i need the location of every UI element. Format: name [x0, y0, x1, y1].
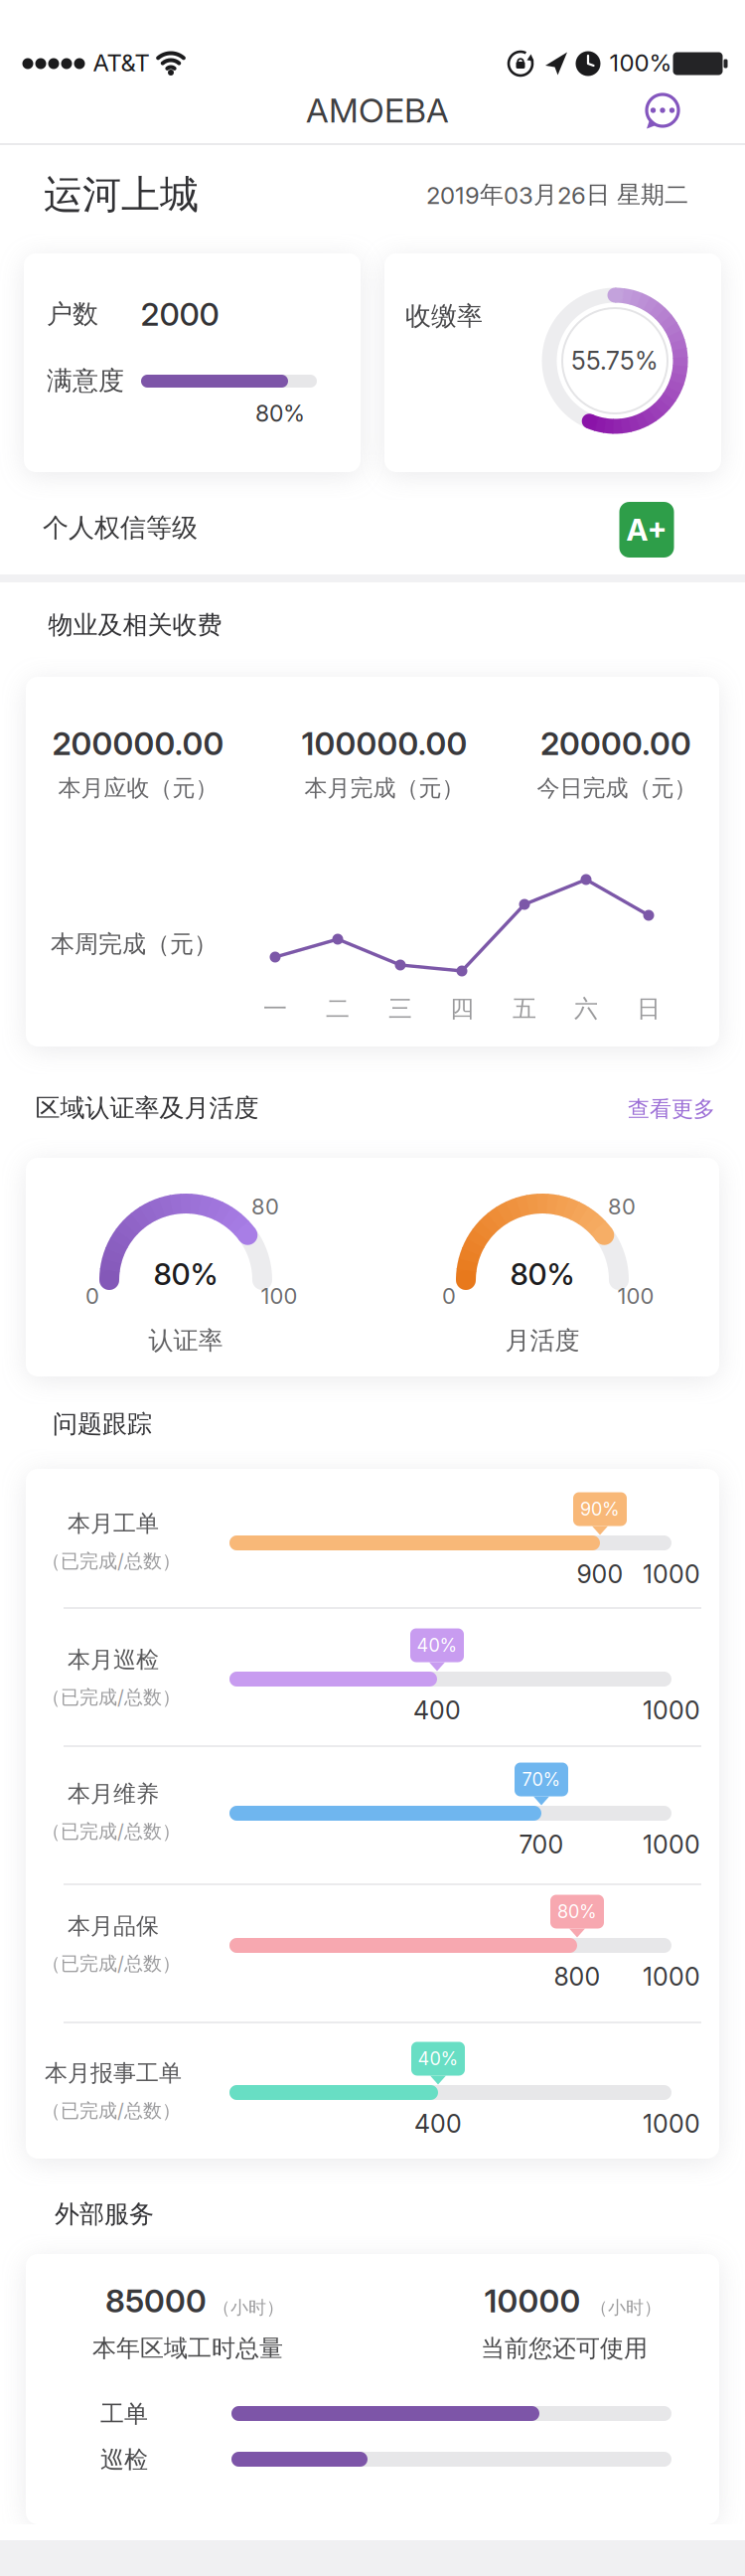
staticText: 问题跟踪: [53, 1409, 152, 1439]
staticText: 20000.00: [540, 725, 691, 762]
staticText: 外部服务: [55, 2199, 154, 2229]
staticText: 700: [519, 1830, 564, 1859]
staticText: 六: [574, 994, 598, 1023]
staticText: （已完成/总数）: [42, 2099, 181, 2122]
staticText: 个人权信等级: [43, 512, 198, 544]
staticText: 80: [608, 1194, 636, 1219]
staticText: 本年区域工时总量: [92, 2334, 283, 2363]
staticText: 五: [513, 994, 536, 1023]
staticText: 100: [617, 1283, 654, 1309]
staticText: 本周完成（元）: [51, 930, 218, 959]
staticText: 2000: [141, 295, 219, 333]
staticText: 400: [413, 1696, 461, 1725]
staticText: 本月品保: [68, 1912, 159, 1940]
staticText: 巡检: [100, 2445, 148, 2474]
staticText: 200000.00: [52, 725, 224, 762]
staticText: 10000: [484, 2282, 581, 2319]
staticText: 本月报事工单: [45, 2059, 182, 2087]
staticText: 900: [577, 1560, 623, 1589]
staticText: 100: [261, 1283, 298, 1309]
staticText: 400: [414, 2109, 462, 2139]
staticText: 收缴率: [405, 300, 483, 332]
staticText: 80%: [557, 1901, 597, 1922]
staticText: 本月巡检: [68, 1646, 159, 1674]
staticText: 40%: [417, 1635, 457, 1656]
staticText: 二: [326, 994, 350, 1023]
button[interactable]: A+: [619, 502, 674, 558]
staticText: （小时）: [213, 2297, 284, 2319]
staticText: 85000: [105, 2282, 207, 2319]
staticText: 80%: [153, 1256, 218, 1292]
staticText: 日: [637, 994, 661, 1023]
staticText: 1000: [643, 1830, 700, 1859]
staticText: 工单: [100, 2399, 148, 2429]
staticText: 月活度: [505, 1325, 580, 1356]
staticText: 1000: [643, 2109, 700, 2139]
staticText: 运河上城: [44, 171, 199, 219]
staticText: 90%: [580, 1499, 620, 1520]
staticText: （小时）: [590, 2297, 662, 2319]
staticText: 区域认证率及月活度: [35, 1093, 259, 1123]
staticText: AMOEBA: [306, 90, 449, 130]
staticText: 当前您还可使用: [481, 2334, 648, 2363]
staticText: 四: [450, 994, 474, 1023]
staticText: 认证率: [149, 1325, 223, 1356]
staticText: （已完成/总数）: [42, 1686, 181, 1709]
staticText: 物业及相关收费: [48, 610, 222, 640]
staticText: 0: [85, 1283, 99, 1309]
staticText: 1000: [643, 1696, 700, 1725]
staticText: 80: [251, 1194, 279, 1219]
staticText: 80%: [255, 400, 305, 427]
staticText: （已完成/总数）: [42, 1550, 181, 1573]
staticText: 本月完成（元）: [304, 774, 464, 802]
staticText: 三: [388, 994, 412, 1023]
staticText: 今日完成（元）: [537, 774, 697, 802]
staticText: 55.75%: [571, 346, 659, 375]
staticText: 本月应收（元）: [58, 774, 218, 802]
staticText: 80%: [510, 1256, 575, 1292]
staticText: 户数: [47, 298, 98, 330]
staticText: AT&T: [93, 48, 149, 77]
button[interactable]: Messages: [641, 90, 684, 134]
staticText: 40%: [418, 2048, 458, 2069]
staticText: 1000: [643, 1560, 700, 1589]
staticText: （已完成/总数）: [42, 1952, 181, 1975]
staticText: 1000: [643, 1962, 700, 1991]
staticText: 0: [442, 1283, 456, 1309]
staticText: 2019年03月26日 星期二: [426, 180, 688, 209]
staticText: 800: [554, 1962, 600, 1991]
staticText: 查看更多: [628, 1096, 715, 1123]
button[interactable]: 查看更多: [628, 1096, 715, 1123]
staticText: 本月维养: [68, 1780, 159, 1808]
staticText: 满意度: [47, 365, 124, 396]
staticText: 一: [263, 994, 287, 1023]
staticText: 100%: [609, 48, 672, 77]
staticText: 70%: [522, 1769, 561, 1790]
staticText: 100000.00: [301, 725, 467, 762]
staticText: 本月工单: [68, 1510, 159, 1538]
staticText: A+: [626, 512, 667, 547]
staticText: （已完成/总数）: [42, 1820, 181, 1843]
